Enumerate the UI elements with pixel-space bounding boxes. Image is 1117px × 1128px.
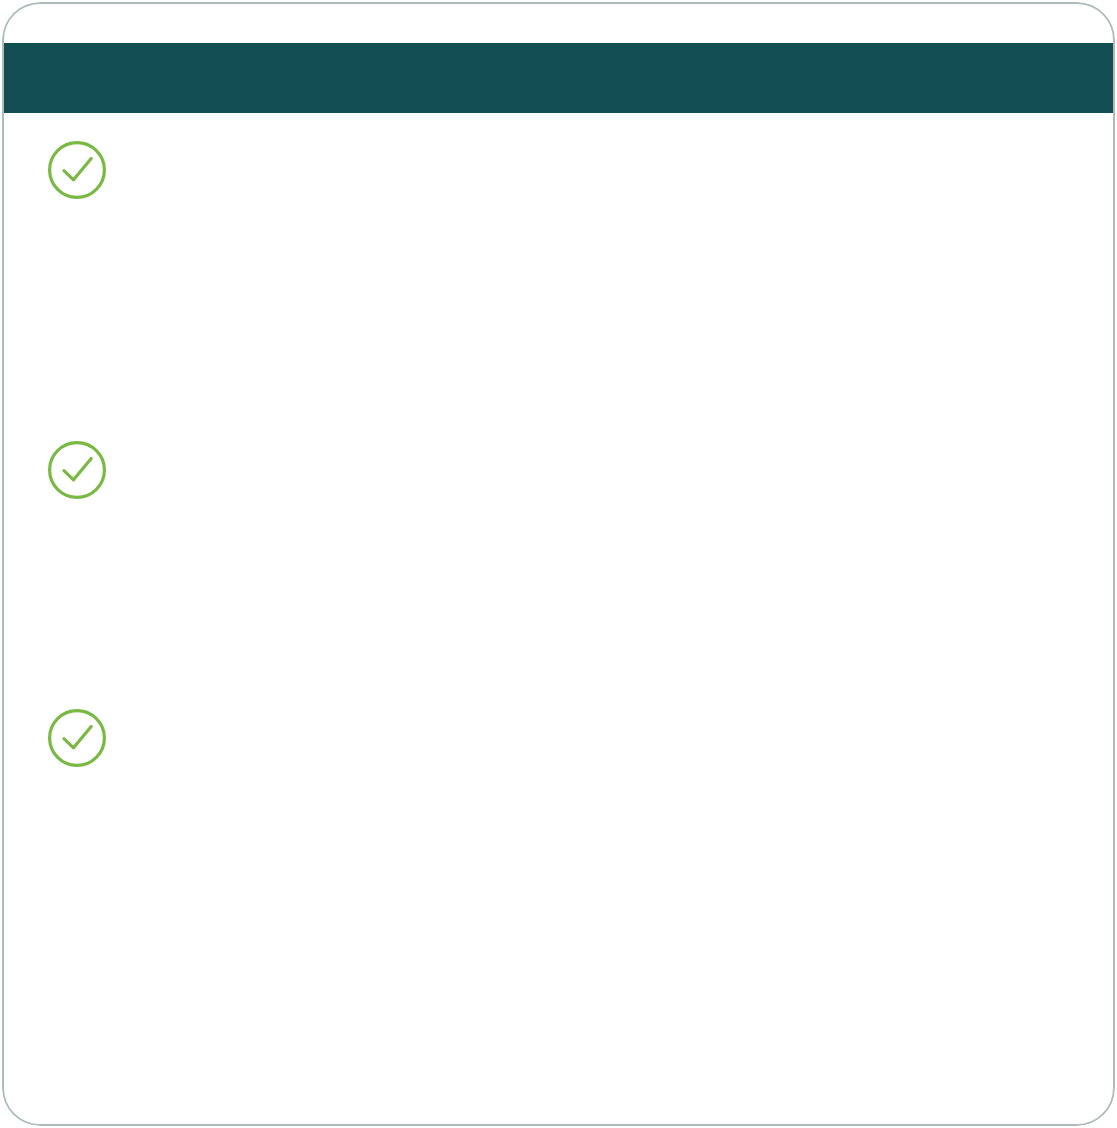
other: Completed item 1: [2, 141, 106, 199]
button[interactable]: [2, 43, 1115, 113]
button[interactable]: Completed item 1: [2, 141, 1115, 199]
button[interactable]: Completed item 2: [2, 441, 1115, 499]
other: Completed item 3: [2, 709, 106, 767]
other: Completed item 2: [2, 441, 106, 499]
button[interactable]: Completed item 3: [2, 709, 1115, 767]
